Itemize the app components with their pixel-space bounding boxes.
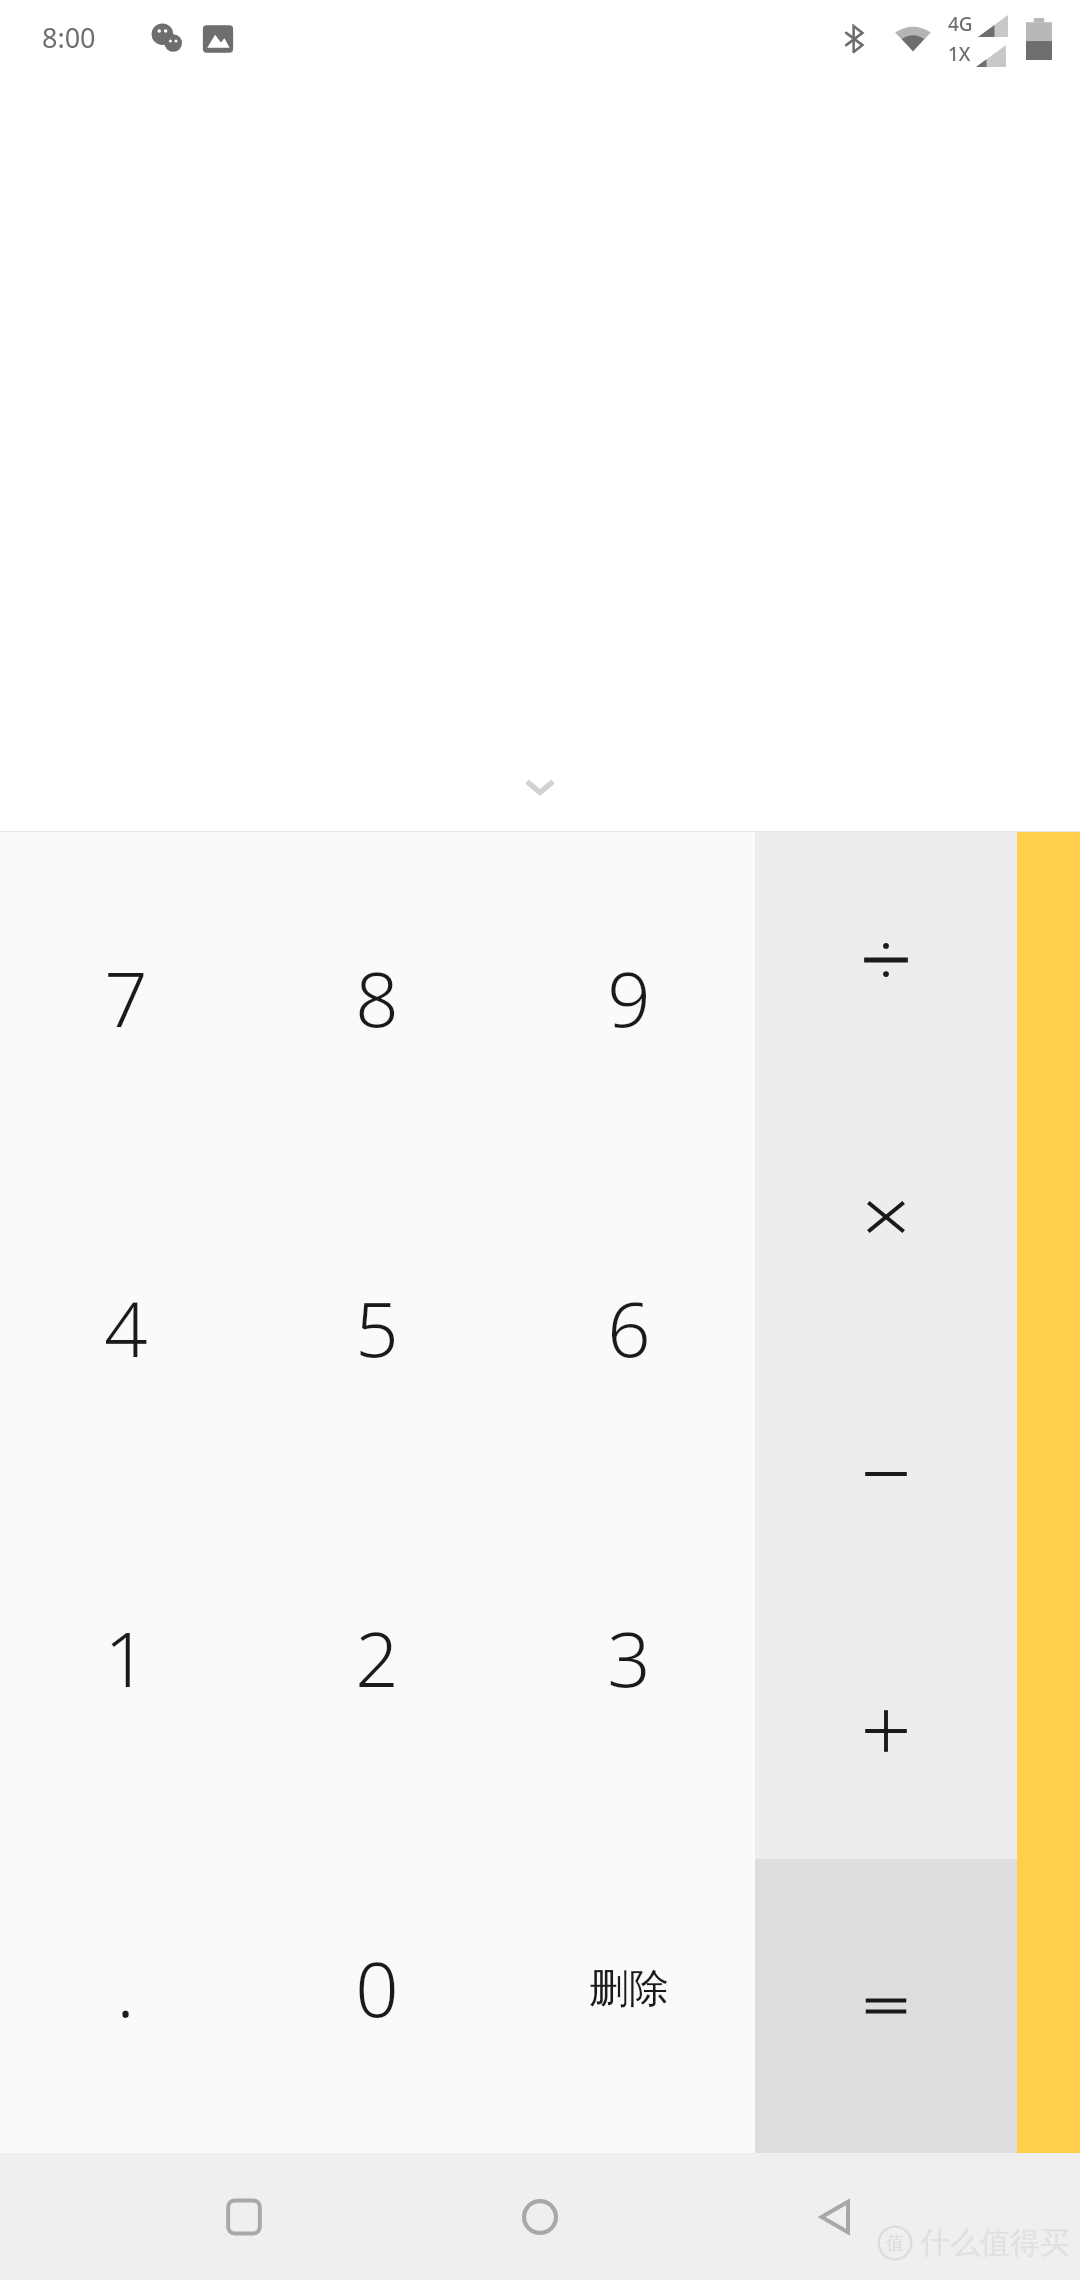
button[interactable]: 7 <box>0 832 251 1163</box>
staticText: 7 <box>104 946 148 1050</box>
button[interactable]: Divide <box>755 832 1017 1088</box>
button[interactable]: . <box>0 1823 251 2153</box>
button[interactable]: 4 <box>0 1163 251 1493</box>
button[interactable]: Multiply <box>755 1088 1017 1345</box>
staticText: 1 <box>104 1606 148 1710</box>
staticText: 8:00 <box>42 19 96 56</box>
staticText: 5 <box>355 1276 399 1380</box>
staticText: 删除 <box>589 1963 669 2013</box>
button[interactable]: 8 <box>251 832 503 1163</box>
button[interactable]: Subtract <box>755 1345 1017 1602</box>
staticText: 4 <box>104 1276 148 1380</box>
staticText: 2 <box>355 1606 399 1710</box>
staticText: 8 <box>355 946 399 1050</box>
button[interactable]: 6 <box>503 1163 755 1493</box>
staticText: 4G <box>948 11 973 37</box>
button[interactable]: Equals <box>755 1859 1017 2153</box>
staticText: 值 <box>886 2232 904 2255</box>
button[interactable]: Add <box>755 1602 1017 1859</box>
button[interactable]: 1 <box>0 1493 251 1823</box>
button[interactable]: 3 <box>503 1493 755 1823</box>
button[interactable]: 0 <box>251 1823 503 2153</box>
button[interactable]: 9 <box>503 832 755 1163</box>
staticText: 3 <box>607 1606 651 1710</box>
staticText: 1X <box>948 41 971 67</box>
button[interactable]: Back <box>792 2173 880 2261</box>
staticText: 什么值得买 <box>920 2224 1070 2262</box>
staticText: 0 <box>355 1936 399 2040</box>
button[interactable]: 2 <box>251 1493 503 1823</box>
button[interactable]: Recents <box>200 2173 288 2261</box>
staticText: . <box>116 1936 135 2040</box>
button[interactable]: 5 <box>251 1163 503 1493</box>
staticText: 6 <box>607 1276 651 1380</box>
button[interactable]: Collapse <box>513 759 567 813</box>
button[interactable]: 删除 <box>503 1823 755 2153</box>
button[interactable]: Home <box>496 2173 584 2261</box>
staticText: 9 <box>607 946 651 1050</box>
